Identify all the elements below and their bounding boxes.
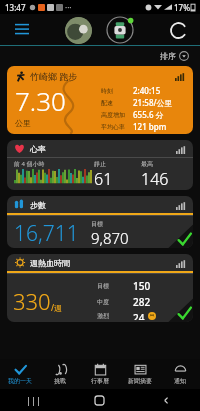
staticText: 282 bbox=[133, 295, 151, 309]
staticText: /週 bbox=[51, 302, 63, 313]
button[interactable]: Menu bbox=[10, 18, 34, 42]
staticText: 新聞摘要 bbox=[128, 377, 152, 385]
button[interactable]: 竹崎鄉 跑步 bbox=[7, 66, 193, 134]
button[interactable]: Home bbox=[66, 389, 133, 411]
staticText: ||| bbox=[26, 394, 41, 406]
staticText: 目標 bbox=[91, 220, 103, 228]
button[interactable]: 新聞摘要 bbox=[120, 359, 160, 389]
button[interactable]: 週熱血時間 bbox=[7, 254, 193, 322]
staticText: 150 bbox=[133, 279, 151, 293]
staticText: 配速 bbox=[101, 99, 131, 107]
staticText: 時刻 bbox=[101, 87, 131, 95]
staticText: 激烈 bbox=[97, 312, 123, 320]
staticText: 目標 bbox=[97, 282, 123, 290]
staticText: 13:47 bbox=[5, 2, 26, 13]
staticText: 步數 bbox=[30, 200, 46, 210]
button[interactable]: 通知 bbox=[160, 359, 200, 389]
staticText: 週熱血時間 bbox=[30, 258, 70, 268]
staticText: 挑戰 bbox=[54, 377, 66, 385]
staticText: 7.30 bbox=[15, 83, 66, 118]
staticText: 17% bbox=[174, 2, 190, 13]
staticText: 竹崎鄉 跑步 bbox=[30, 70, 78, 82]
staticText: 心率 bbox=[30, 144, 46, 154]
staticText: 行事曆 bbox=[91, 377, 109, 385]
staticText: 前 4 個小時 bbox=[14, 160, 45, 168]
button[interactable]: Profile bbox=[65, 17, 92, 44]
button[interactable]: Sync bbox=[166, 18, 190, 42]
staticText: 330 bbox=[13, 286, 51, 316]
button[interactable]: Device bbox=[106, 16, 134, 44]
staticText: 中度 bbox=[97, 298, 123, 306]
staticText: 21:58/公里 bbox=[133, 97, 173, 108]
staticText: 最高 bbox=[141, 160, 153, 168]
staticText: 16,711 bbox=[14, 219, 79, 248]
staticText: 61 bbox=[94, 168, 113, 190]
button[interactable]: 心率 bbox=[7, 140, 193, 190]
staticText: 9,870 bbox=[91, 228, 129, 248]
staticText: 2:40:15 bbox=[133, 85, 161, 96]
staticText: 通知 bbox=[174, 377, 186, 385]
staticText: 655.6 分 bbox=[133, 109, 164, 120]
staticText: 平均心率 bbox=[101, 123, 131, 131]
button[interactable]: Recents bbox=[0, 389, 66, 411]
button[interactable]: 挑戰 bbox=[40, 359, 80, 389]
staticText: 我的一天 bbox=[8, 377, 32, 385]
button[interactable]: 行事曆 bbox=[80, 359, 120, 389]
staticText: 146 bbox=[141, 168, 169, 190]
button[interactable]: 我的一天 bbox=[0, 359, 40, 389]
staticText: 靜止 bbox=[94, 160, 106, 168]
staticText: 排序 bbox=[160, 51, 176, 61]
staticText: 高度增加 bbox=[101, 111, 131, 119]
staticText: 24 bbox=[133, 311, 145, 320]
button[interactable]: 步數 bbox=[7, 196, 193, 248]
staticText: 公里 bbox=[15, 118, 31, 128]
button[interactable]: 排序 bbox=[158, 51, 191, 61]
button[interactable]: Back bbox=[133, 389, 200, 411]
staticText: 121 bpm bbox=[133, 121, 167, 132]
staticText: ··· bbox=[65, 2, 72, 13]
